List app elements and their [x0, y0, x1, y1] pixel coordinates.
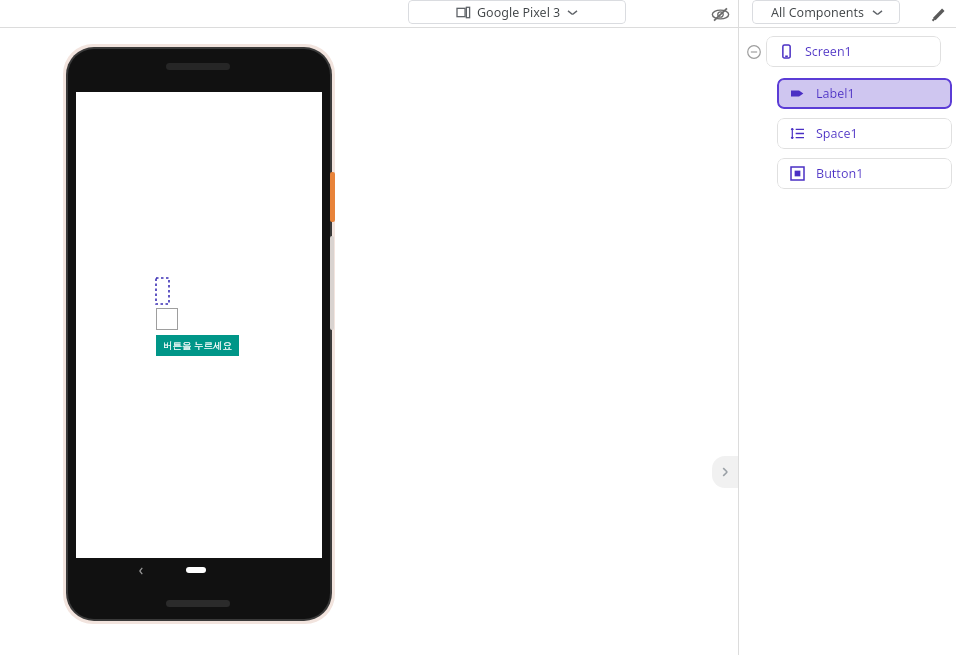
button[interactable]: Home — [186, 567, 206, 573]
button[interactable]: All Components — [752, 0, 900, 24]
button[interactable]: Collapse Screen1 — [746, 44, 761, 59]
staticText: Space1 — [816, 125, 858, 142]
button[interactable]: Label1 — [777, 78, 952, 109]
button[interactable]: 버튼을 누르세요 — [163, 339, 232, 352]
button[interactable]: Screen1 — [766, 36, 941, 67]
staticText: 버튼을 누르세요 — [163, 339, 232, 352]
button[interactable]: Button1 — [777, 158, 952, 189]
staticText: All Components — [771, 4, 865, 21]
button[interactable] — [156, 308, 178, 330]
staticText: Google Pixel 3 — [477, 4, 561, 21]
staticText: Button1 — [816, 165, 864, 182]
button[interactable] — [156, 278, 169, 304]
staticText: Label1 — [816, 85, 855, 102]
staticText: Screen1 — [805, 43, 852, 60]
button[interactable]: Back — [134, 564, 148, 578]
button[interactable]: Google Pixel 3 — [408, 0, 626, 24]
button[interactable]: Rename component — [926, 2, 950, 26]
button[interactable]: Space1 — [777, 118, 952, 149]
button[interactable]: Toggle hidden components — [708, 2, 732, 26]
button[interactable]: Expand panel — [712, 456, 738, 488]
